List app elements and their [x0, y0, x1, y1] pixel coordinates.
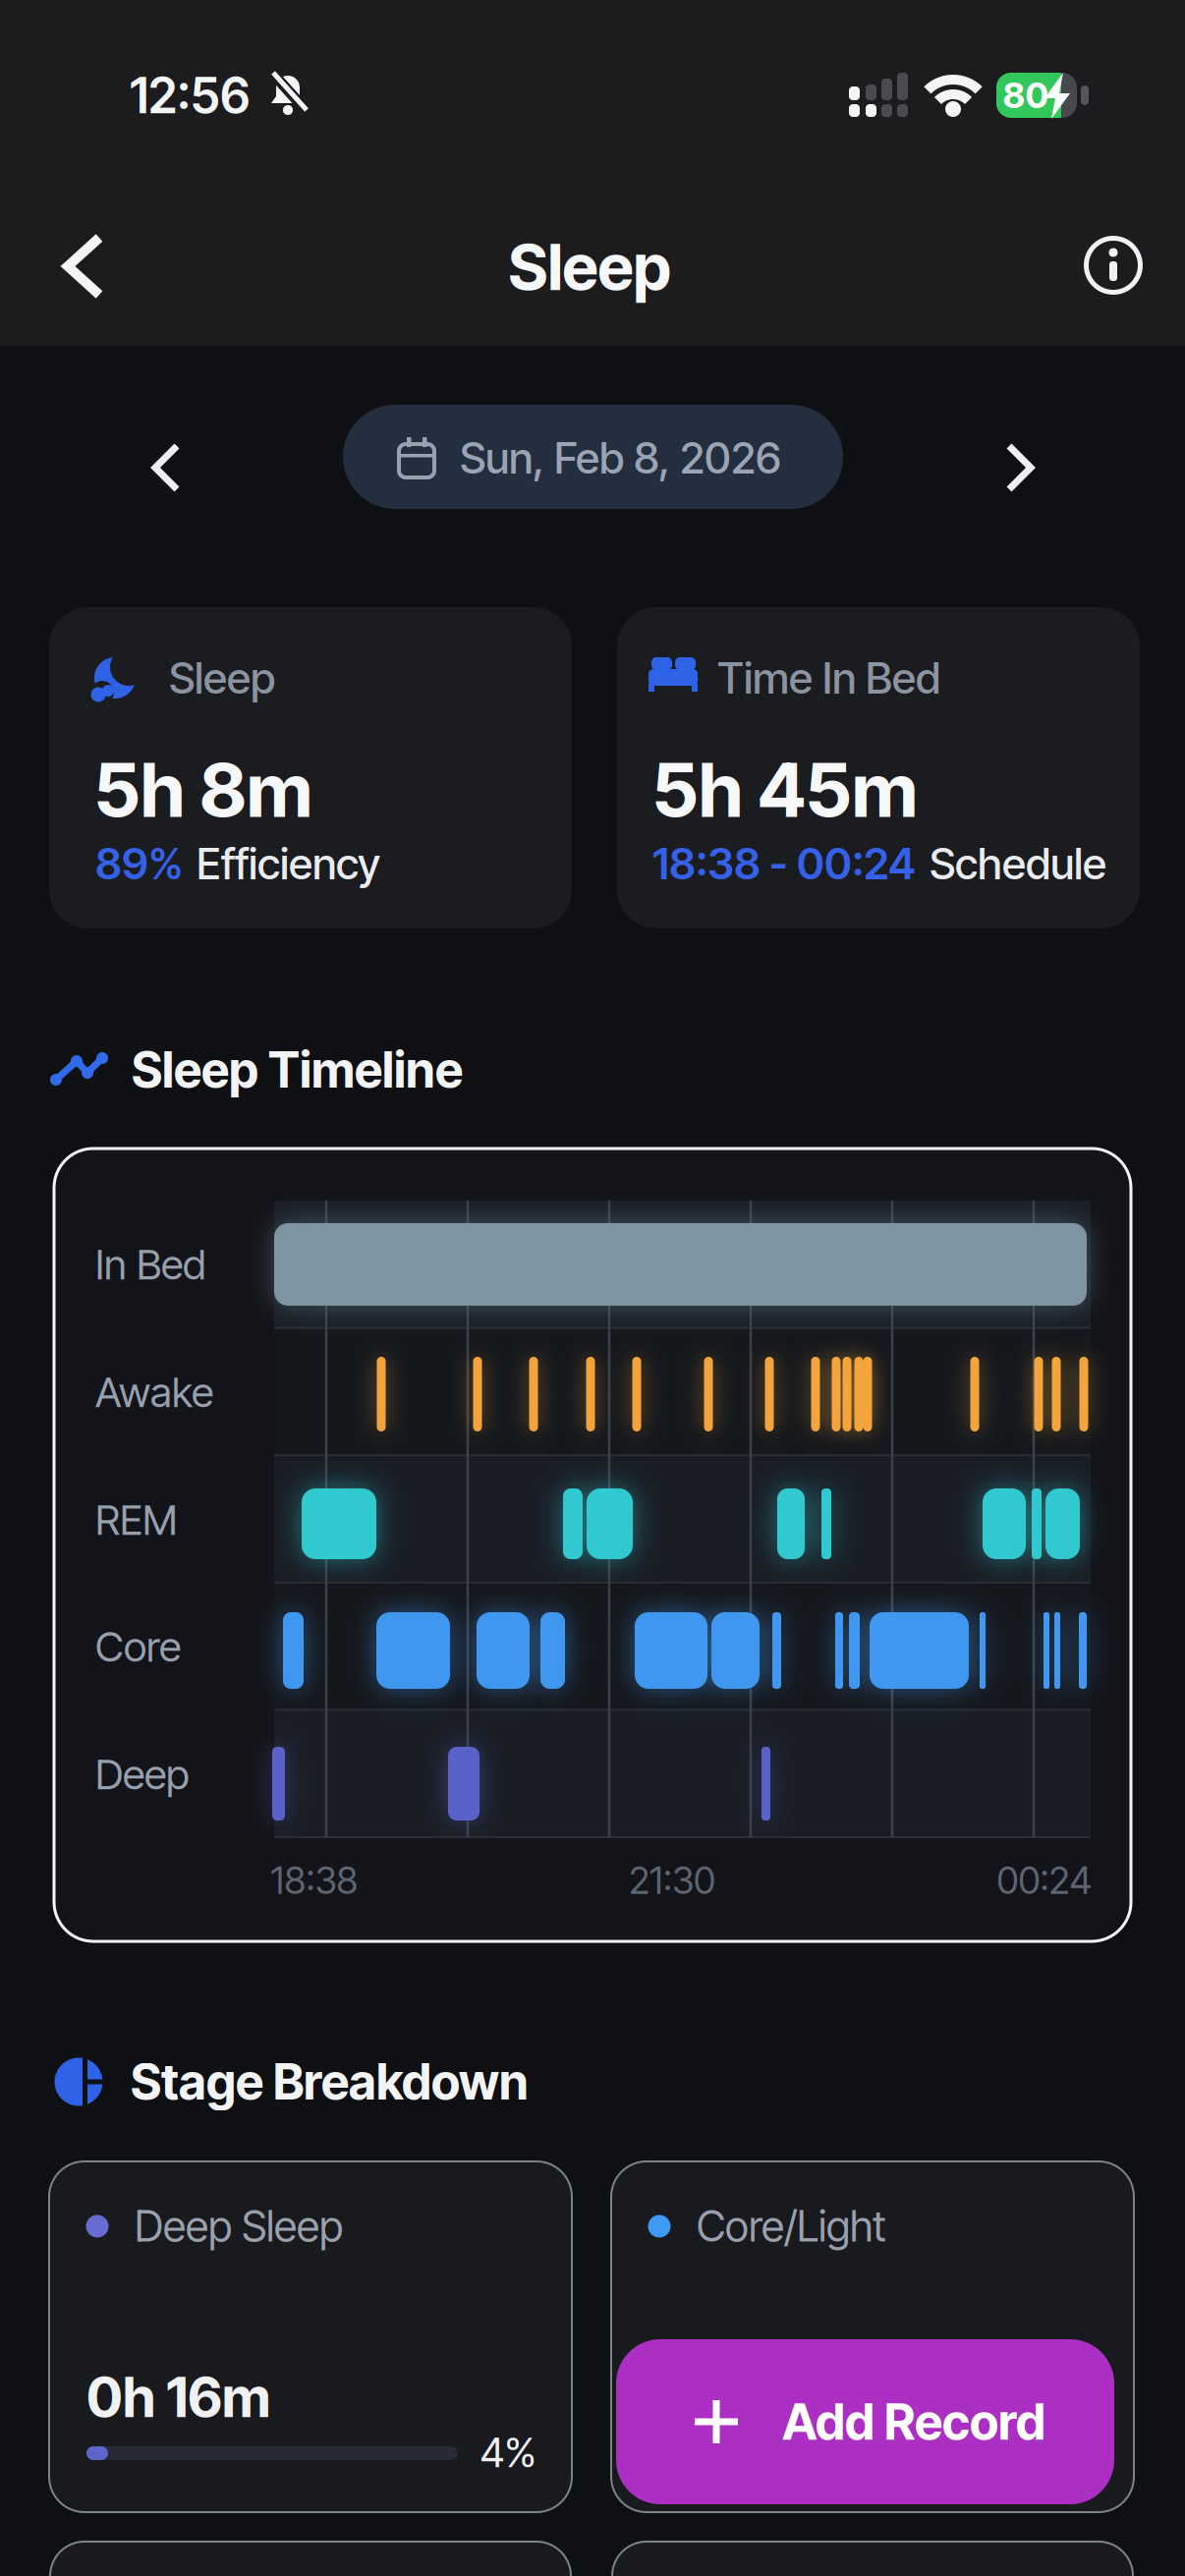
- staticText: 18:38: [271, 1858, 358, 1903]
- staticText: 0h 16m: [86, 2364, 270, 2430]
- button[interactable]: [611, 2161, 1134, 2512]
- staticText: Sleep Timeline: [132, 1040, 463, 1099]
- staticText: Sun, Feb 8, 2026: [460, 432, 781, 484]
- staticText: Core: [95, 1622, 181, 1671]
- button[interactable]: [49, 2161, 572, 2512]
- staticText: In Bed: [95, 1239, 206, 1289]
- staticText: 5h 8m: [94, 745, 312, 835]
- button[interactable]: [1086, 238, 1140, 292]
- staticText: Stage Breakdown: [131, 2052, 529, 2111]
- staticText: Schedule: [930, 837, 1106, 890]
- staticText: 80: [1003, 74, 1049, 117]
- button[interactable]: Add Record: [616, 2339, 1114, 2504]
- staticText: Core/Light: [697, 2201, 886, 2252]
- staticText: Time In Bed: [717, 652, 940, 704]
- staticText: 00:24: [997, 1858, 1092, 1903]
- staticText: 12:56: [130, 66, 250, 125]
- staticText: Deep Sleep: [135, 2201, 343, 2252]
- staticText: Efficiency: [197, 837, 380, 890]
- button[interactable]: [137, 438, 196, 497]
- staticText: Deep: [95, 1749, 190, 1799]
- staticText: 5h 45m: [652, 745, 918, 835]
- staticText: 18:38 - 00:24: [652, 837, 916, 890]
- button[interactable]: [52, 227, 115, 306]
- staticText: 21:30: [629, 1858, 715, 1903]
- staticText: Awake: [95, 1367, 213, 1417]
- staticText: 4%: [480, 2427, 536, 2477]
- staticText: Add Record: [782, 2392, 1045, 2452]
- staticText: Sleep: [169, 652, 275, 704]
- staticText: Sleep: [508, 229, 671, 305]
- staticText: REM: [95, 1495, 178, 1545]
- button[interactable]: [990, 438, 1049, 497]
- button[interactable]: Sun, Feb 8, 2026: [343, 405, 843, 509]
- staticText: 89%: [95, 837, 183, 890]
